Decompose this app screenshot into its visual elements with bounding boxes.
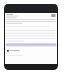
button[interactable]: Phone screen [4,4,58,70]
